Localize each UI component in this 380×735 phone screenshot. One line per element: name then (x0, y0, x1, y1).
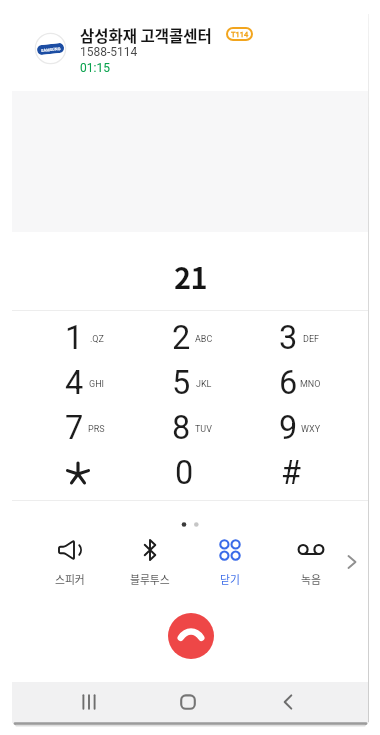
staticText: 삼성화재 고객콜센터 (80, 24, 212, 46)
button[interactable]: # (238, 450, 345, 495)
button[interactable]: 7 (24, 405, 131, 450)
staticText: DEF (303, 334, 319, 345)
button[interactable]: 6 (238, 360, 345, 405)
button[interactable]: 블루투스 (118, 531, 182, 595)
staticText: 7 (65, 409, 84, 447)
staticText: 6 (279, 364, 298, 402)
staticText: 녹음 (301, 571, 321, 587)
staticText: 4 (65, 364, 84, 402)
staticText: GHI (89, 379, 104, 390)
button[interactable]: 닫기 (198, 531, 262, 595)
staticText: 01:15 (80, 61, 110, 75)
staticText: JKL (196, 379, 212, 390)
button[interactable]: 8 (131, 405, 238, 450)
button[interactable] (24, 450, 131, 495)
button[interactable]: 스피커 (38, 531, 102, 595)
staticText: 1588-5114 (80, 45, 138, 59)
button[interactable]: 1 (24, 315, 131, 360)
staticText: TUV (195, 424, 212, 435)
staticText: 9 (279, 409, 298, 447)
staticText: 스피커 (55, 571, 85, 587)
button[interactable]: 9 (238, 405, 345, 450)
button[interactable] (168, 613, 214, 659)
staticText: SAMSUNG (41, 46, 61, 52)
staticText: 블루투스 (130, 571, 170, 587)
button[interactable]: 3 (238, 315, 345, 360)
staticText: 0 (175, 454, 194, 492)
button[interactable] (61, 683, 117, 721)
staticText: MNO (300, 379, 321, 390)
staticText: 3 (279, 319, 298, 357)
staticText: 2 (172, 319, 191, 357)
staticText: T114 (231, 30, 249, 39)
staticText: 5 (172, 364, 191, 402)
staticText: .QZ (90, 334, 104, 345)
staticText: 21 (174, 255, 207, 289)
button[interactable] (160, 683, 216, 721)
button[interactable]: 0 (131, 450, 238, 495)
button[interactable] (340, 548, 364, 576)
button[interactable]: 4 (24, 360, 131, 405)
button[interactable]: 5 (131, 360, 238, 405)
staticText: 1 (65, 319, 84, 357)
staticText: 8 (172, 409, 191, 447)
staticText: 닫기 (220, 571, 240, 587)
button[interactable] (260, 683, 316, 721)
staticText: WXY (301, 424, 321, 435)
staticText: # (281, 454, 302, 492)
staticText: PRS (88, 424, 105, 435)
button[interactable]: 2 (131, 315, 238, 360)
staticText: ABC (195, 334, 213, 345)
button[interactable]: 녹음 (279, 531, 343, 595)
